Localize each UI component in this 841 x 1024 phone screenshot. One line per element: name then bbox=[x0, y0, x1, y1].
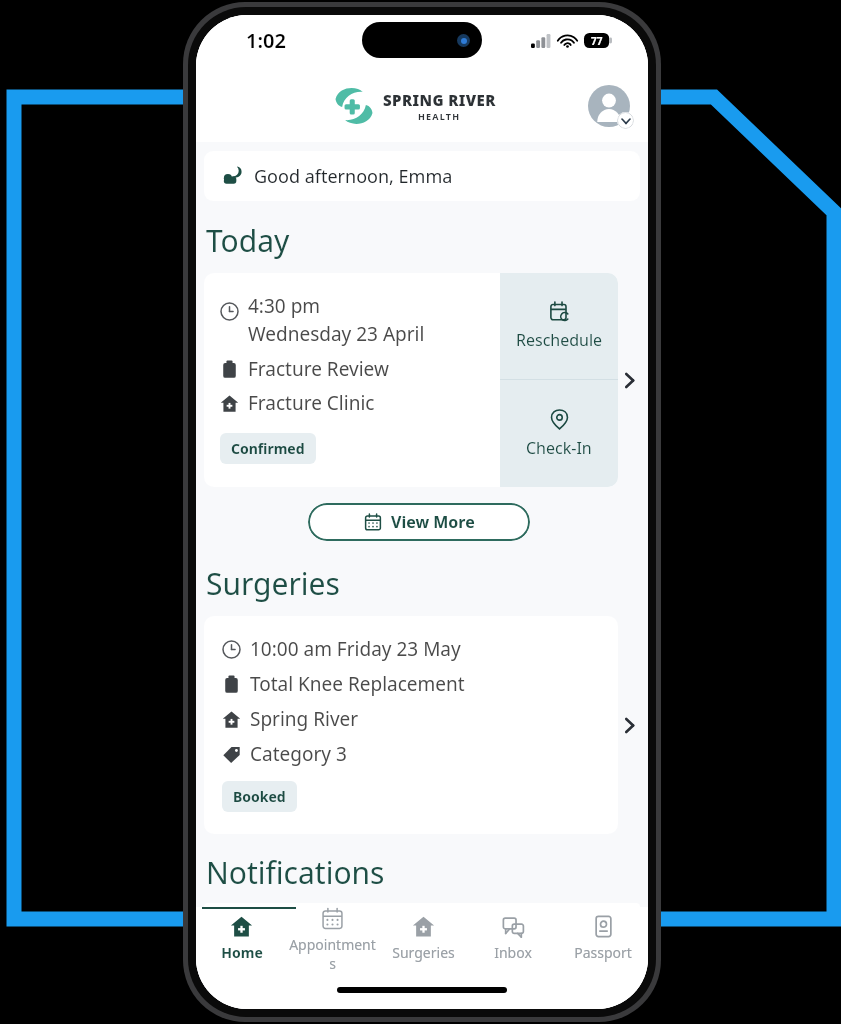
button[interactable]: Passport bbox=[558, 907, 648, 969]
staticText: Reschedule bbox=[516, 329, 603, 351]
other: Open details bbox=[623, 719, 636, 732]
button[interactable]: 4:30 pm bbox=[204, 273, 618, 487]
button[interactable]: Inbox bbox=[468, 907, 558, 969]
staticText: Good afternoon, Emma bbox=[254, 164, 453, 189]
button[interactable]: Good afternoon, Emma bbox=[204, 151, 640, 201]
staticText: 10:00 am Friday 23 May bbox=[250, 636, 461, 662]
staticText: Fracture Review bbox=[248, 356, 389, 382]
staticText: Inbox bbox=[494, 943, 532, 962]
staticText: Fracture Clinic bbox=[248, 390, 375, 416]
staticText: SPRING RIVER bbox=[383, 90, 496, 110]
staticText: Notifications bbox=[206, 852, 385, 893]
button[interactable]: Home bbox=[196, 907, 287, 969]
staticText: View More bbox=[391, 511, 475, 533]
staticText: Total Knee Replacement bbox=[250, 671, 465, 697]
staticText: Category 3 bbox=[250, 741, 347, 767]
staticText: Confirmed bbox=[231, 439, 305, 458]
staticText: 4:30 pm bbox=[248, 293, 321, 319]
staticText: 77 bbox=[591, 34, 603, 48]
button[interactable]: Appointments bbox=[287, 907, 378, 969]
button[interactable]: Surgeries bbox=[378, 907, 468, 969]
staticText: 1:02 bbox=[246, 27, 286, 54]
staticText: Today bbox=[206, 220, 290, 261]
staticText: Appointments bbox=[287, 935, 378, 969]
button[interactable]: Reschedule bbox=[500, 273, 618, 379]
other: Open details bbox=[623, 374, 636, 387]
staticText: Check-In bbox=[526, 437, 592, 459]
staticText: Spring River bbox=[250, 706, 359, 732]
button[interactable]: 10:00 am Friday 23 May bbox=[204, 616, 618, 834]
button[interactable]: Check-In bbox=[500, 380, 618, 487]
staticText: HEALTH bbox=[418, 110, 461, 122]
button[interactable]: Account bbox=[586, 83, 632, 129]
staticText: Surgeries bbox=[392, 943, 455, 962]
staticText: Wednesday 23 April bbox=[248, 321, 425, 347]
button[interactable]: View More bbox=[308, 503, 530, 541]
staticText: Surgeries bbox=[206, 563, 340, 604]
staticText: Passport bbox=[574, 943, 632, 962]
staticText: Booked bbox=[233, 787, 286, 806]
staticText: Home bbox=[221, 943, 263, 962]
